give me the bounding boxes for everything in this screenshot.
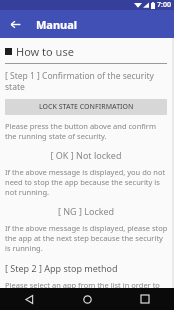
staticText: LOCK STATE CONFIRMATION: [39, 102, 134, 112]
staticText: [ Step 1 ] Confirmation of the security …: [5, 70, 169, 92]
staticText: How to use: [16, 44, 74, 59]
staticText: If the above message is displayed, pleas…: [5, 223, 169, 253]
staticText: Please select an app from the list in or…: [5, 280, 169, 288]
staticText: [ Step 2 ] App stop method: [5, 262, 118, 274]
staticText: Manual: [36, 17, 78, 32]
staticText: Please press the button above and confir…: [5, 121, 169, 141]
staticText: 7:00: [157, 0, 171, 10]
button[interactable]: Home: [58, 288, 116, 310]
button[interactable]: Recents: [116, 288, 174, 310]
button[interactable]: Back: [6, 15, 24, 33]
button[interactable]: Back: [0, 288, 58, 310]
staticText: [ NG ] Locked: [5, 205, 167, 217]
button[interactable]: LOCK STATE CONFIRMATION: [5, 99, 167, 115]
staticText: If the above message is displayed, you d…: [5, 167, 169, 197]
staticText: [ OK ] Not locked: [5, 149, 167, 161]
